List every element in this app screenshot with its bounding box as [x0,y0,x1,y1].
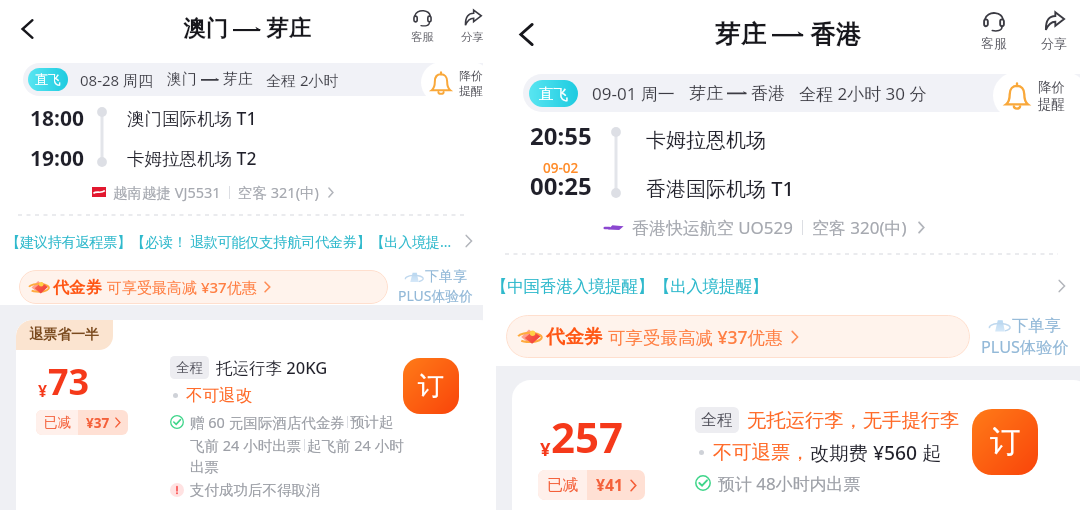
staticText: 赠 60 元国际酒店代金券 [190,412,345,432]
button[interactable]: 降价 [421,62,492,103]
staticText: 卡姆拉恩机场 [646,128,766,153]
button[interactable]: 降价 [993,72,1080,119]
staticText: 下单享 [425,268,467,286]
staticText: 起飞前 24 小时 [307,435,404,455]
staticText: ¥41 [596,474,624,496]
staticText: 芽庄 [715,19,766,50]
staticText: 香港 [751,83,785,104]
staticText: 芽庄 [266,15,311,43]
button[interactable]: 订 [972,409,1038,475]
staticText: 芽庄 [223,70,253,89]
staticText: 客服 [981,35,1007,51]
button[interactable]: 客服 [400,9,444,44]
staticText: 直飞 [539,85,569,103]
staticText: 全程 [701,410,733,430]
button[interactable]: 越南越捷 VJ5531 [92,182,334,202]
staticText: 257 [551,408,624,465]
button[interactable]: 订 [403,358,459,414]
button[interactable]: 【中国香港入境提醒】【出入境提醒】 [483,270,1080,302]
staticText: 不可退票， [713,440,810,464]
staticText: 09-01 周一 [592,82,675,105]
button[interactable]: 下单享 [388,268,483,305]
staticText: 托运行李 20KG [216,356,328,379]
staticText: 香港国际机场 T1 [646,175,794,202]
button[interactable]: 分享 [1032,11,1076,51]
staticText: 澳门国际机场 T1 [127,106,257,130]
button[interactable]: 客服 [972,11,1016,51]
staticText: 提醒 [1038,96,1065,113]
staticText: 飞前 24 小时出票 [190,435,302,455]
staticText: 【中国香港入境提醒】【出入境提醒】 [491,276,1053,297]
staticText: 提醒 [459,83,483,98]
button[interactable]: 【建议持有返程票】【必读！ 退款可能仅支持航司代金券】【出入境提… [0,225,483,257]
staticText: 19:00 [30,144,84,173]
staticText: 不可退改 [186,385,252,406]
staticText: 已减 [44,414,71,431]
button[interactable]: 已减 [538,470,645,500]
button[interactable]: 直飞 [23,63,506,96]
staticText: 全程 2小时 30 分 [799,82,927,105]
button[interactable]: 代金券 [506,315,970,358]
button[interactable]: Back [512,20,540,48]
staticText: 卡姆拉恩机场 T2 [127,146,257,170]
staticText: 空客 320(中) [812,216,907,239]
staticText: 预计 48小时内出票 [718,472,861,495]
staticText: 客服 [411,30,434,44]
staticText: 09-02 [543,159,579,177]
staticText: 空客 321(中) [238,182,319,202]
staticText: 全程 2小时 [266,70,339,90]
staticText: 越南越捷 VJ5531 [113,182,221,202]
button[interactable]: 下单享 [970,315,1080,358]
staticText: PLUS体验价 [981,336,1069,358]
staticText: 降价 [1038,79,1065,96]
staticText: PLUS体验价 [398,286,474,305]
staticText: 已减 [547,475,579,495]
staticText: 代金券 [546,325,603,349]
staticText: 下单享 [1012,315,1061,336]
staticText: 【建议持有返程票】【必读！ 退款可能仅支持航司代金券】【出入境提… [6,232,460,251]
staticText: 分享 [1041,35,1067,51]
staticText: ¥37 [86,414,110,432]
staticText: 无托运行李，无手提行李 [747,408,960,432]
staticText: 订 [990,423,1021,461]
staticText: 预计起 [350,413,394,431]
staticText: 直飞 [35,72,61,88]
staticText: 订 [418,370,444,403]
staticText: ¥ [38,380,48,402]
staticText: 支付成功后不得取消 [190,481,321,499]
staticText: 香港 [810,19,861,50]
staticText: 退票省一半 [29,326,99,344]
staticText: ¥ [540,436,551,461]
button[interactable]: 代金券 [19,270,388,304]
staticText: 改期费 ¥560 起 [810,439,942,465]
staticText: 澳门 [183,15,228,43]
staticText: 73 [48,357,90,406]
button[interactable]: 分享 [450,9,494,44]
staticText: 全程 [176,359,203,376]
staticText: 可享受最高减 ¥37优惠 [608,325,783,349]
staticText: 芽庄 [689,83,723,104]
staticText: 澳门 [167,70,197,89]
staticText: 降价 [459,68,483,83]
staticText: 00:25 [530,169,592,201]
staticText: 香港快运航空 UO529 [632,216,793,239]
button[interactable]: Back [13,15,41,43]
staticText: 代金券 [53,277,102,297]
staticText: 可享受最高减 ¥37优惠 [107,277,257,297]
staticText: 18:00 [30,104,84,133]
button[interactable]: 已减 [36,410,128,435]
staticText: 出票 [190,458,219,476]
button[interactable]: 直飞 [523,74,1080,112]
staticText: 08-28 周四 [80,70,154,90]
button[interactable]: 香港快运航空 UO529 [604,216,925,239]
staticText: 分享 [461,30,484,44]
staticText: 20:55 [530,119,592,152]
